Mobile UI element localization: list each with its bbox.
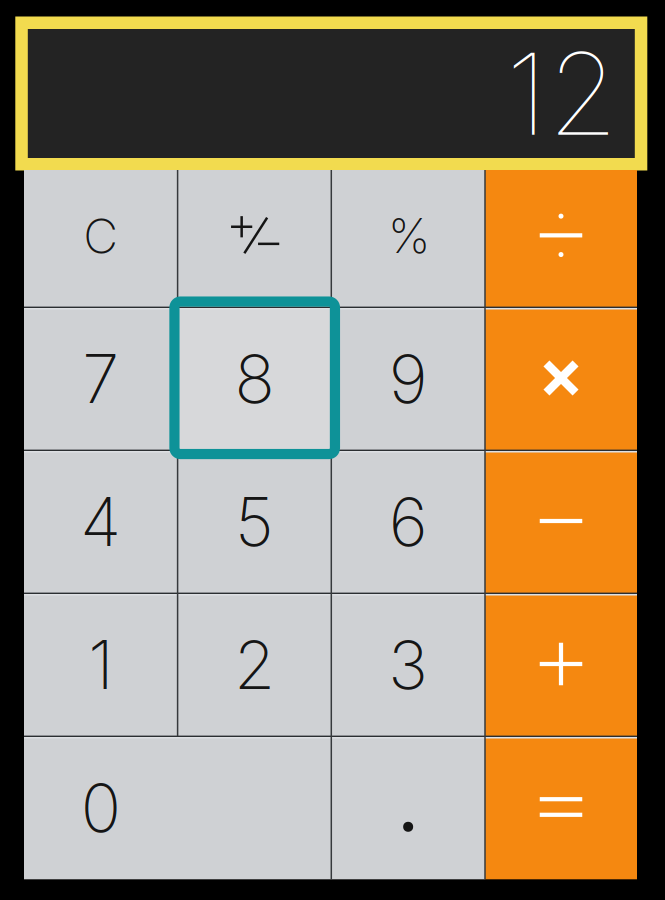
staticText: 0	[81, 767, 121, 848]
button[interactable]: Plus or minus	[178, 170, 331, 307]
staticText: 8	[234, 338, 274, 419]
button[interactable]: 7	[24, 307, 178, 450]
button[interactable]: Divide	[485, 170, 637, 307]
button[interactable]: 0	[24, 736, 331, 879]
staticText: C	[83, 207, 118, 265]
staticText: 5	[235, 481, 274, 562]
staticText: 6	[389, 481, 428, 562]
button[interactable]: 4	[24, 450, 178, 593]
button[interactable]: 5	[178, 450, 331, 593]
button[interactable]: Plus	[485, 593, 637, 736]
button[interactable]: 9	[331, 307, 485, 450]
button[interactable]: Decimal point	[331, 736, 485, 879]
staticText: 12	[506, 25, 618, 162]
button[interactable]: Minus	[485, 450, 637, 593]
button[interactable]: Equals	[485, 736, 637, 879]
staticText: 2	[234, 624, 275, 705]
button[interactable]: 6	[331, 450, 485, 593]
button[interactable]: 3	[331, 593, 485, 736]
staticText: %	[388, 207, 431, 265]
button[interactable]: %	[331, 170, 485, 307]
staticText: 1	[88, 624, 113, 705]
staticText: 9	[389, 338, 428, 419]
staticText: 3	[388, 624, 428, 705]
button[interactable]: 2	[178, 593, 331, 736]
button[interactable]: C	[24, 170, 178, 307]
button[interactable]: 8	[178, 307, 331, 450]
button[interactable]: 1	[24, 593, 178, 736]
button[interactable]: Multiply	[485, 307, 637, 450]
staticText: 7	[82, 338, 119, 419]
staticText: 4	[80, 481, 121, 562]
